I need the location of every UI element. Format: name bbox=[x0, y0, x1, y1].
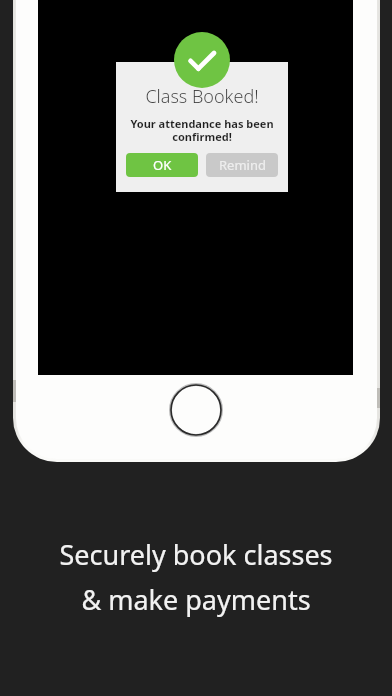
other: Home button bbox=[169, 383, 223, 437]
other: Booking confirmed bbox=[174, 32, 230, 88]
button[interactable]: Remind bbox=[206, 153, 278, 177]
staticText: & make payments bbox=[81, 581, 311, 618]
staticText: OK bbox=[153, 156, 172, 174]
staticText: Remind bbox=[219, 156, 266, 174]
staticText: Class Booked! bbox=[145, 84, 259, 109]
staticText: Your attendance has been confirmed! bbox=[130, 116, 274, 144]
staticText: Securely book classes bbox=[59, 536, 333, 573]
button[interactable]: OK bbox=[126, 153, 198, 177]
